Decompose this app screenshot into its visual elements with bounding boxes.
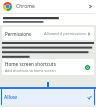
- button[interactable]: Allow: [0, 89, 96, 105]
- staticText: Chrome: [16, 3, 35, 10]
- staticText: Add shortcuts to home screen: [5, 68, 56, 73]
- staticText: Home screen shortcuts: [5, 61, 56, 67]
- staticText: Allow: [4, 94, 17, 101]
- button[interactable]: Home screen shortcuts: [2, 59, 94, 75]
- staticText: Allowed 4 permissions: [44, 31, 86, 36]
- button[interactable]: Permissions: [2, 27, 94, 40]
- button[interactable]: Chrome: [0, 0, 96, 13]
- button[interactable]: Toggle home screen shortcuts: [83, 63, 91, 71]
- staticText: Permissions: [5, 31, 32, 37]
